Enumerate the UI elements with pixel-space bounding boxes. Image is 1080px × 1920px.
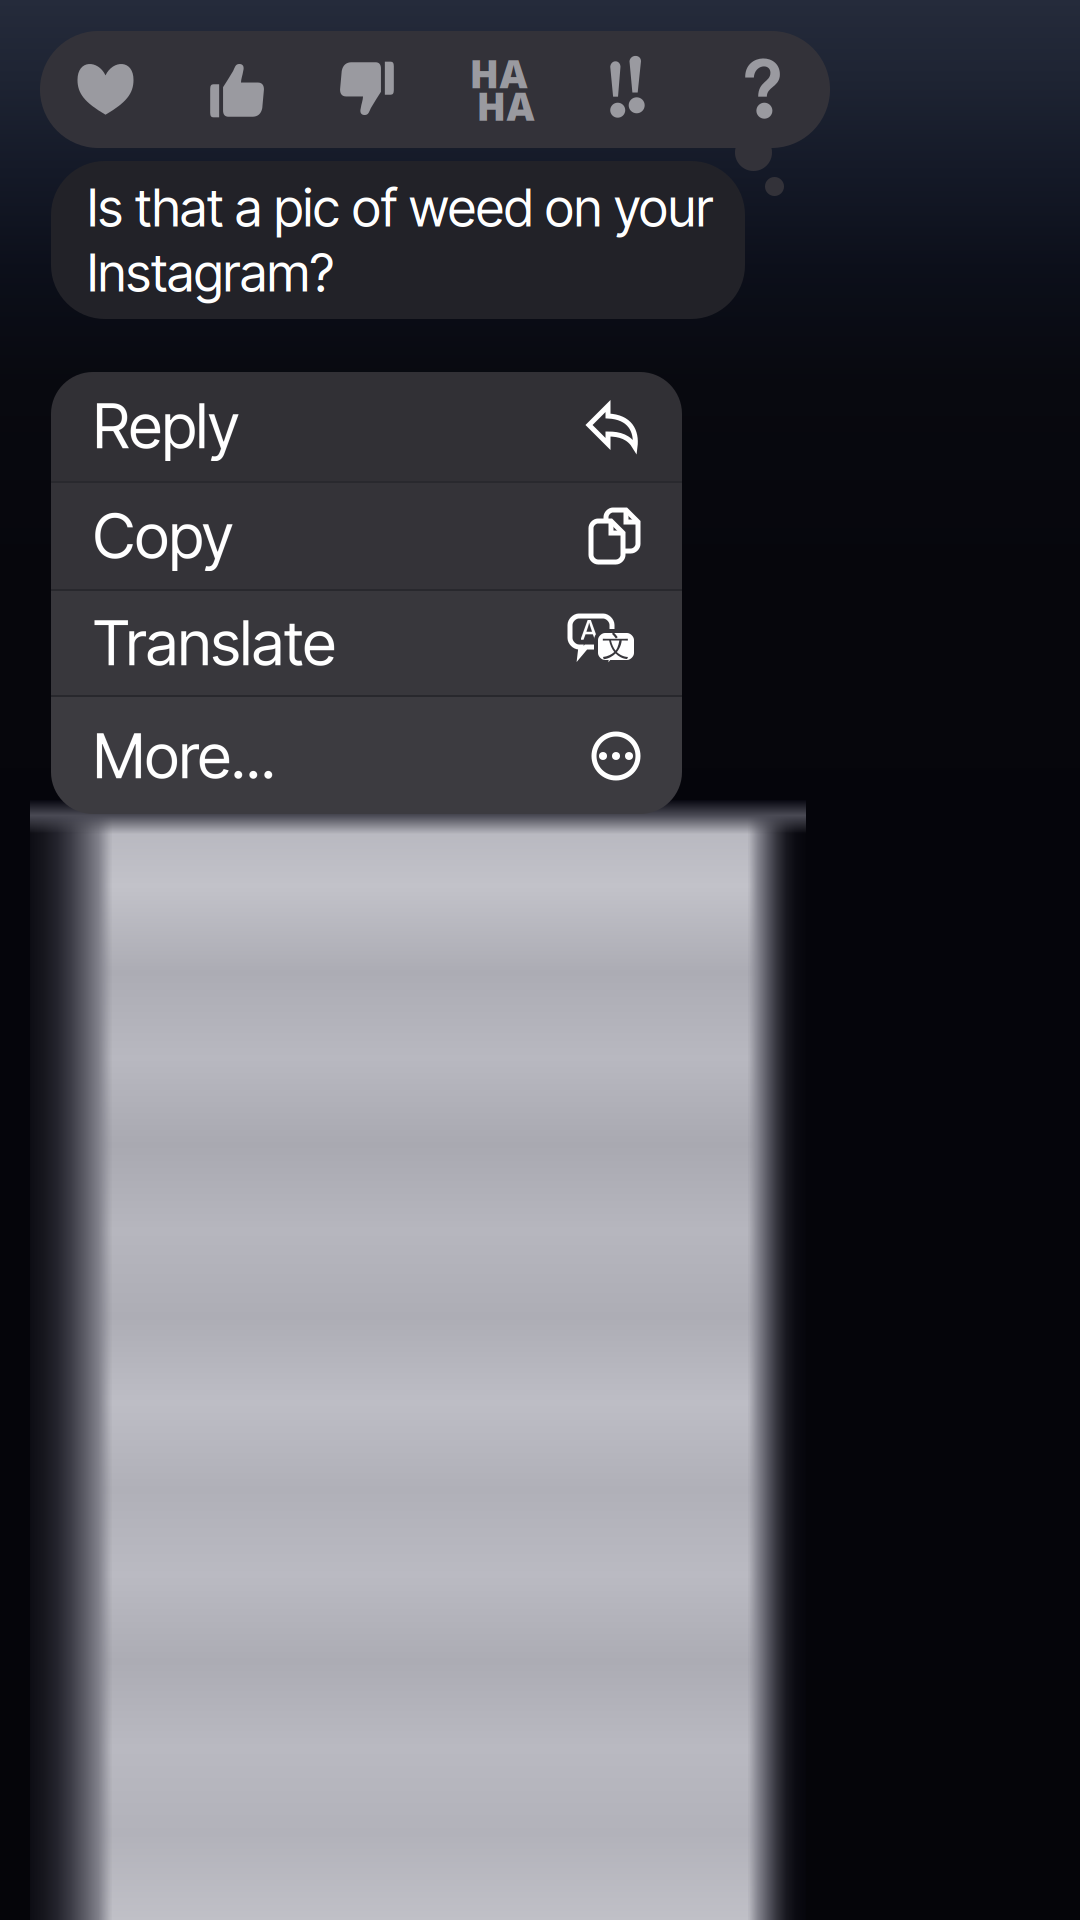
- staticText: Instagram?: [87, 241, 334, 304]
- button[interactable]: Question: [744, 59, 780, 119]
- button[interactable]: Copy: [51, 483, 682, 589]
- staticText: Translate: [93, 606, 336, 680]
- staticText: HA: [476, 80, 534, 131]
- staticText: A: [580, 612, 597, 647]
- button[interactable]: Dislike: [339, 60, 395, 118]
- button[interactable]: Like: [208, 60, 264, 118]
- button[interactable]: More...: [51, 697, 682, 815]
- staticText: 文: [602, 629, 630, 664]
- button[interactable]: Reply: [51, 371, 682, 481]
- button[interactable]: Exclamation: [609, 59, 650, 119]
- button[interactable]: Translate: [51, 591, 682, 695]
- staticText: HA: [469, 48, 527, 99]
- button[interactable]: Love: [77, 64, 133, 115]
- staticText: More...: [93, 719, 276, 793]
- staticText: Reply: [93, 389, 239, 463]
- staticText: Is that a pic of weed on your: [87, 176, 713, 239]
- button[interactable]: Haha: [464, 57, 532, 121]
- staticText: Copy: [93, 499, 233, 573]
